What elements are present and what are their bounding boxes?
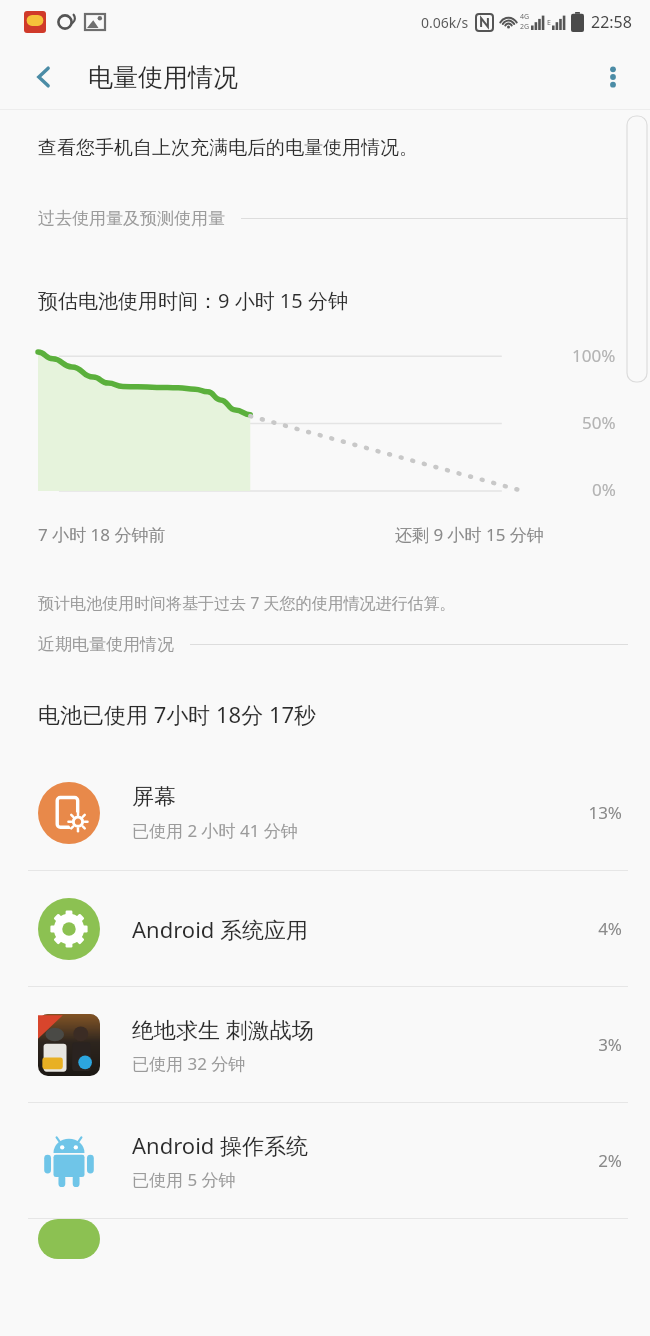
- staticText: 近期电量使用情况: [38, 634, 174, 655]
- staticText: 查看您手机自上次充满电后的电量使用情况。: [38, 136, 418, 160]
- staticText: 50%: [582, 411, 616, 434]
- button[interactable]: Android 操作系统: [0, 1103, 650, 1218]
- staticText: 100%: [572, 344, 616, 367]
- button[interactable]: 屏幕: [0, 755, 650, 870]
- staticText: 电量使用情况: [88, 62, 238, 93]
- staticText: 3%: [598, 1033, 622, 1056]
- staticText: 电池已使用 7小时 18分 17秒: [38, 699, 317, 729]
- staticText: 过去使用量及预测使用量: [38, 208, 225, 229]
- staticText: 13%: [588, 801, 622, 824]
- staticText: 2G: [520, 22, 530, 32]
- button[interactable]: More options: [588, 52, 638, 102]
- button[interactable]: [0, 1219, 650, 1259]
- staticText: 还剩 9 小时 15 分钟: [395, 523, 544, 546]
- button[interactable]: Android 系统应用: [0, 871, 650, 986]
- button[interactable]: Back: [18, 51, 70, 103]
- staticText: 预计电池使用时间将基于过去 7 天您的使用情况进行估算。: [38, 592, 456, 614]
- staticText: 预估电池使用时间：9 小时 15 分钟: [38, 287, 348, 314]
- staticText: 绝地求生 刺激战场: [132, 1014, 314, 1044]
- staticText: 已使用 5 分钟: [132, 1168, 236, 1191]
- staticText: 屏幕: [132, 783, 176, 811]
- staticText: 0.06k/s: [421, 13, 469, 32]
- staticText: E: [547, 18, 551, 28]
- staticText: 已使用 2 小时 41 分钟: [132, 819, 298, 842]
- staticText: 2%: [598, 1149, 622, 1172]
- staticText: Android 系统应用: [132, 914, 309, 944]
- staticText: 4%: [598, 917, 622, 940]
- staticText: 已使用 32 分钟: [132, 1052, 246, 1075]
- staticText: 4G: [520, 12, 530, 22]
- staticText: 22:58: [591, 11, 632, 33]
- staticText: Android 操作系统: [132, 1130, 309, 1160]
- staticText: 7 小时 18 分钟前: [38, 523, 166, 546]
- button[interactable]: 绝地求生 刺激战场: [0, 987, 650, 1102]
- staticText: 0%: [592, 478, 616, 501]
